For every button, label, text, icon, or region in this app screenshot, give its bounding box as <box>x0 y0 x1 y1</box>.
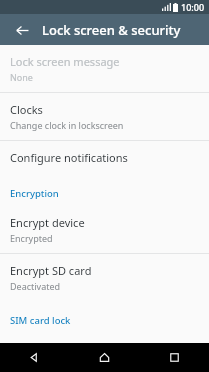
staticText: Encryption <box>10 187 59 200</box>
staticText: None <box>10 71 33 83</box>
staticText: Encrypted <box>10 232 53 244</box>
staticText: Deactivated <box>10 280 61 292</box>
button[interactable]: Back <box>10 18 34 42</box>
button[interactable]: Lock screen message <box>0 45 209 92</box>
staticText: Encrypt SD card <box>10 263 92 278</box>
button[interactable]: Clocks <box>0 93 209 140</box>
staticText: SIM card lock <box>10 314 71 327</box>
button[interactable]: Encrypt device <box>0 206 209 253</box>
button[interactable]: Recent apps <box>139 343 209 372</box>
staticText: Lock screen & security <box>42 21 181 39</box>
button[interactable]: Back <box>0 343 69 372</box>
button[interactable]: Home <box>69 343 139 372</box>
staticText: Encrypt device <box>10 215 85 230</box>
staticText: Lock screen message <box>10 54 120 69</box>
staticText: Configure notifications <box>10 150 128 165</box>
staticText: Clocks <box>10 102 43 117</box>
staticText: Change clock in lockscreen <box>10 119 124 131</box>
button[interactable]: Configure notifications <box>0 141 209 174</box>
staticText: 10:00 <box>181 1 205 13</box>
button[interactable]: Encrypt SD card <box>0 254 209 301</box>
